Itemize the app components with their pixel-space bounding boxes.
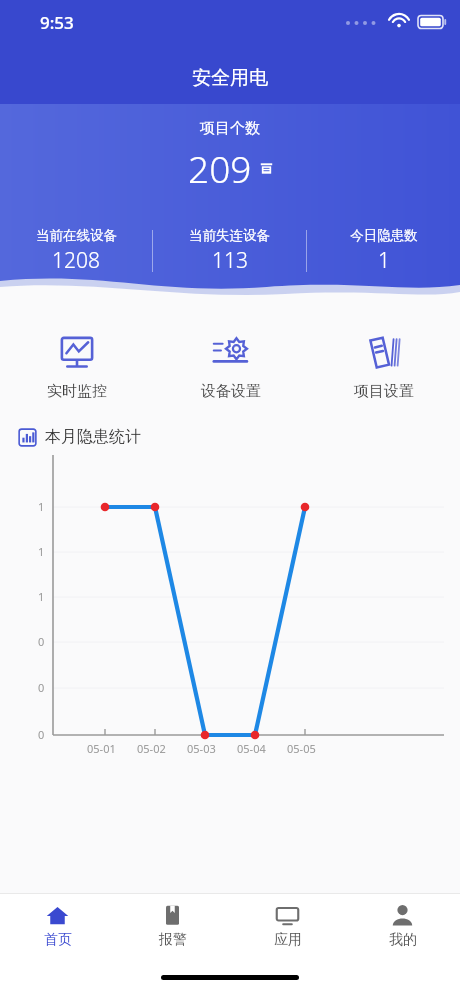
- staticText: 209: [188, 143, 252, 193]
- button[interactable]: 本月隐患统计: [18, 427, 460, 447]
- staticText: 当前失连设备: [189, 227, 270, 244]
- staticText: 113: [212, 246, 248, 275]
- button[interactable]: 实时监控: [0, 330, 154, 403]
- staticText: 项目个数: [200, 119, 260, 138]
- staticText: 1: [38, 589, 45, 604]
- staticText: 应用: [274, 931, 302, 949]
- button[interactable]: 今日隐患数: [307, 227, 460, 275]
- staticText: 首页: [44, 931, 72, 949]
- staticText: 05-02: [137, 741, 166, 756]
- button[interactable]: Alarm: [115, 903, 230, 949]
- staticText: 05-01: [87, 741, 116, 756]
- staticText: 05-05: [287, 741, 316, 756]
- button[interactable]: 当前失连设备: [153, 227, 306, 275]
- button[interactable]: Apps: [230, 903, 345, 949]
- button[interactable]: 设备设置: [154, 330, 307, 403]
- staticText: 1: [38, 499, 45, 514]
- button[interactable]: Home: [0, 903, 115, 949]
- staticText: 本月隐患统计: [45, 427, 141, 447]
- staticText: 0: [38, 634, 45, 649]
- staticText: 05-03: [187, 741, 216, 756]
- staticText: 项目设置: [354, 382, 414, 401]
- staticText: 设备设置: [201, 382, 261, 401]
- staticText: 1208: [52, 246, 100, 275]
- staticText: 9:53: [40, 11, 74, 34]
- staticText: 今日隐患数: [350, 227, 418, 244]
- staticText: 当前在线设备: [36, 227, 117, 244]
- staticText: 1: [38, 544, 45, 559]
- staticText: 0: [38, 727, 45, 742]
- staticText: 05-04: [237, 741, 266, 756]
- staticText: 安全用电: [0, 66, 460, 90]
- button[interactable]: 当前在线设备: [0, 227, 152, 275]
- staticText: 0: [38, 680, 45, 695]
- staticText: 实时监控: [47, 382, 107, 401]
- button[interactable]: 项目设置: [307, 330, 460, 403]
- staticText: 我的: [389, 931, 417, 949]
- button[interactable]: Mine: [345, 903, 460, 949]
- staticText: 报警: [159, 931, 187, 949]
- staticText: 1: [378, 246, 390, 275]
